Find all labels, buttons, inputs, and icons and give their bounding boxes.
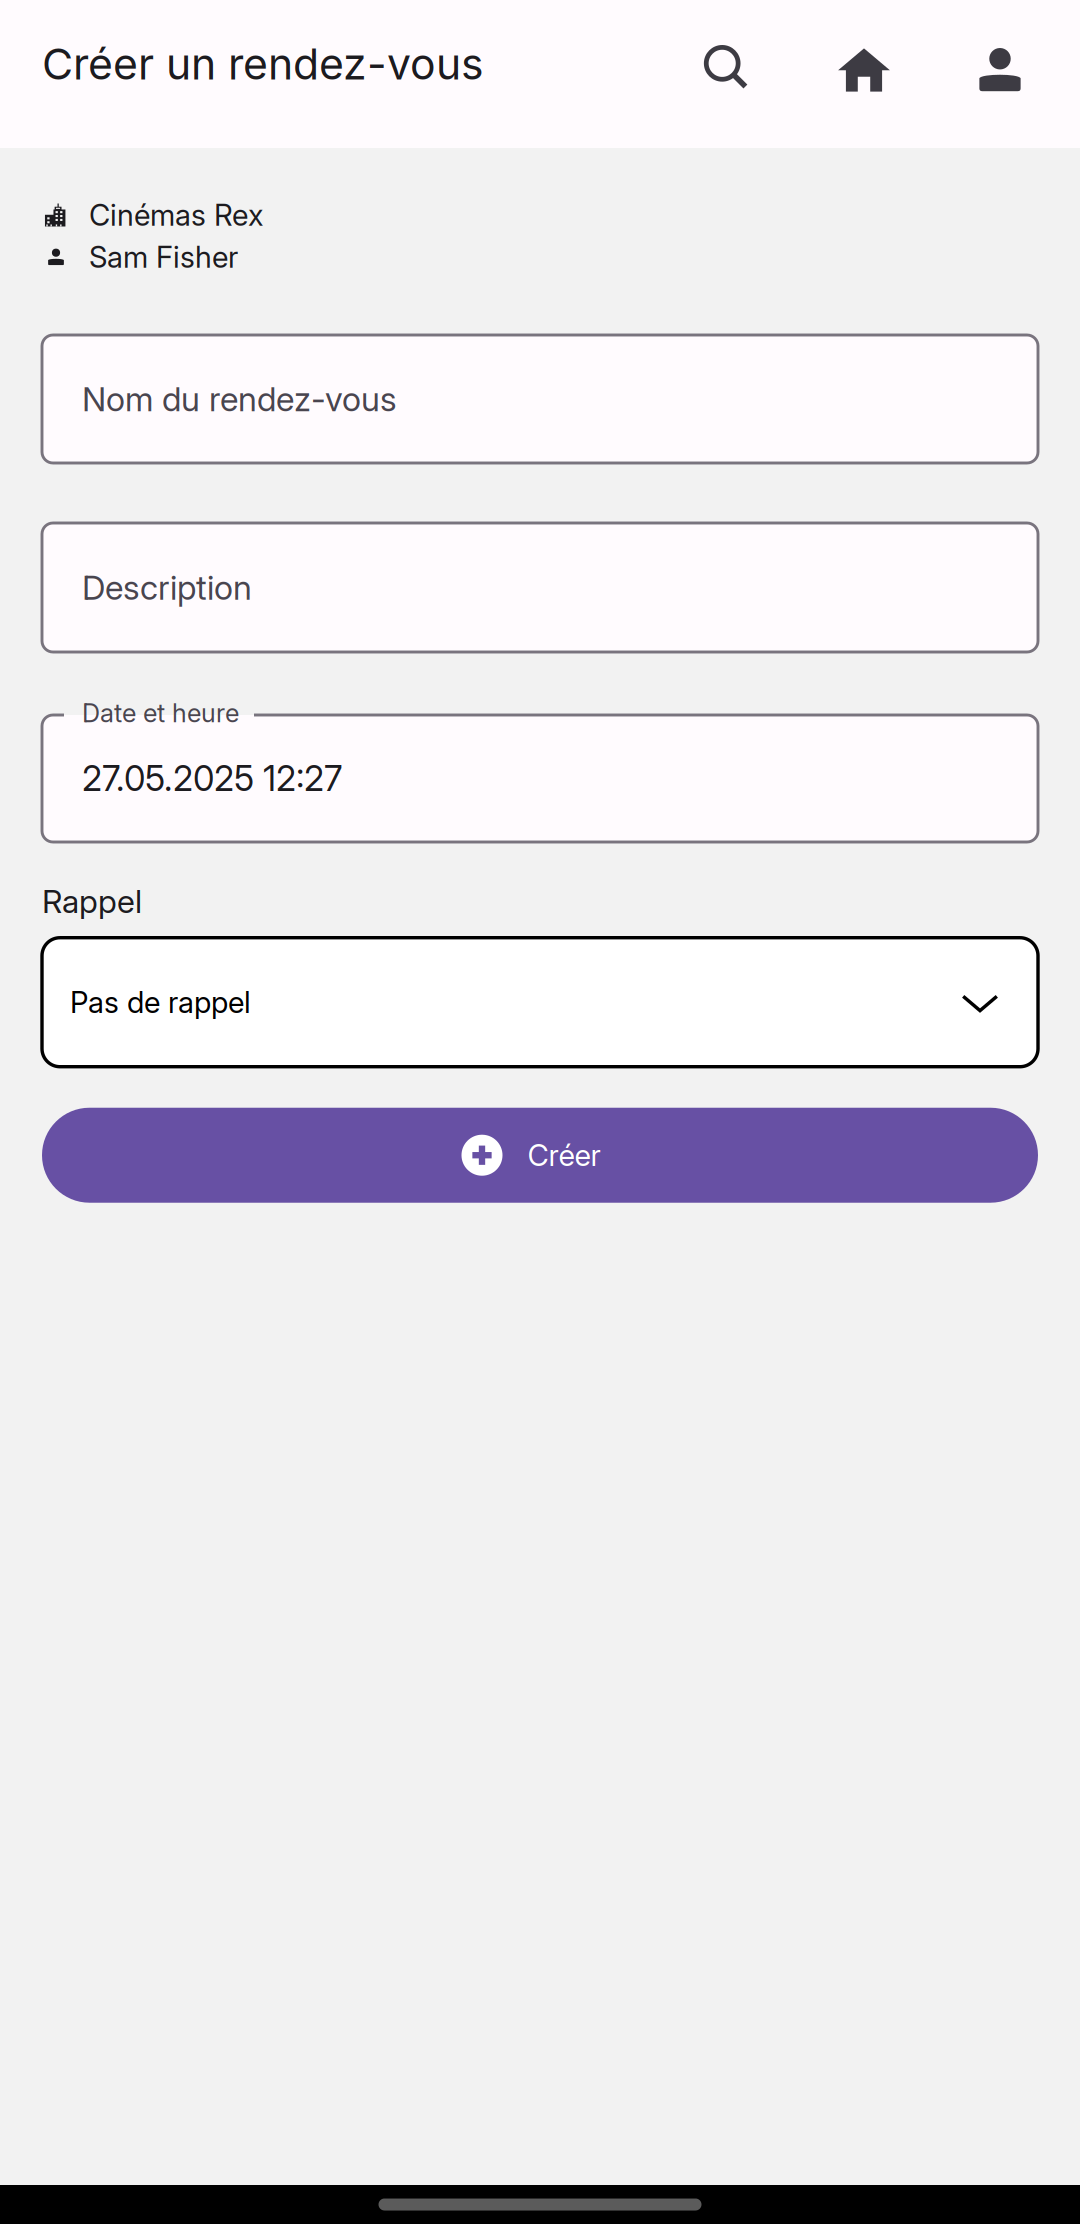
staticText: Sam Fisher bbox=[89, 239, 238, 275]
button[interactable]: Nom du rendez-vous bbox=[42, 335, 1038, 463]
staticText: Nom du rendez-vous bbox=[82, 379, 397, 419]
staticText: Date et heure bbox=[82, 698, 239, 728]
button[interactable]: Profile bbox=[932, 0, 1068, 148]
staticText: Cinémas Rex bbox=[89, 197, 263, 233]
button[interactable]: Description bbox=[42, 523, 1038, 652]
staticText: Créer bbox=[527, 1137, 600, 1173]
staticText: Rappel bbox=[42, 882, 142, 921]
button[interactable]: 27.05.2025 12:27 bbox=[42, 715, 1038, 842]
button[interactable]: Home bbox=[796, 0, 932, 148]
button[interactable]: Créer bbox=[42, 1108, 1038, 1203]
button[interactable]: Pas de rappel bbox=[42, 938, 1038, 1067]
staticText: Description bbox=[82, 567, 252, 608]
button[interactable]: Search bbox=[660, 0, 796, 148]
staticText: 27.05.2025 12:27 bbox=[82, 757, 342, 799]
staticText: Pas de rappel bbox=[70, 984, 251, 1020]
staticText: Créer un rendez-vous bbox=[42, 38, 484, 90]
